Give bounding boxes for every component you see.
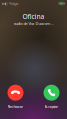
button[interactable]: Aceptar <box>43 85 59 109</box>
button[interactable]: Rechazar <box>7 85 23 109</box>
staticText: Yoigo <box>9 1 18 6</box>
staticText: Rechazar <box>7 104 23 109</box>
staticText: audio de Voz Duocom… <box>13 21 53 26</box>
staticText: Aceptar <box>44 104 58 109</box>
staticText: Oficina <box>22 12 44 21</box>
